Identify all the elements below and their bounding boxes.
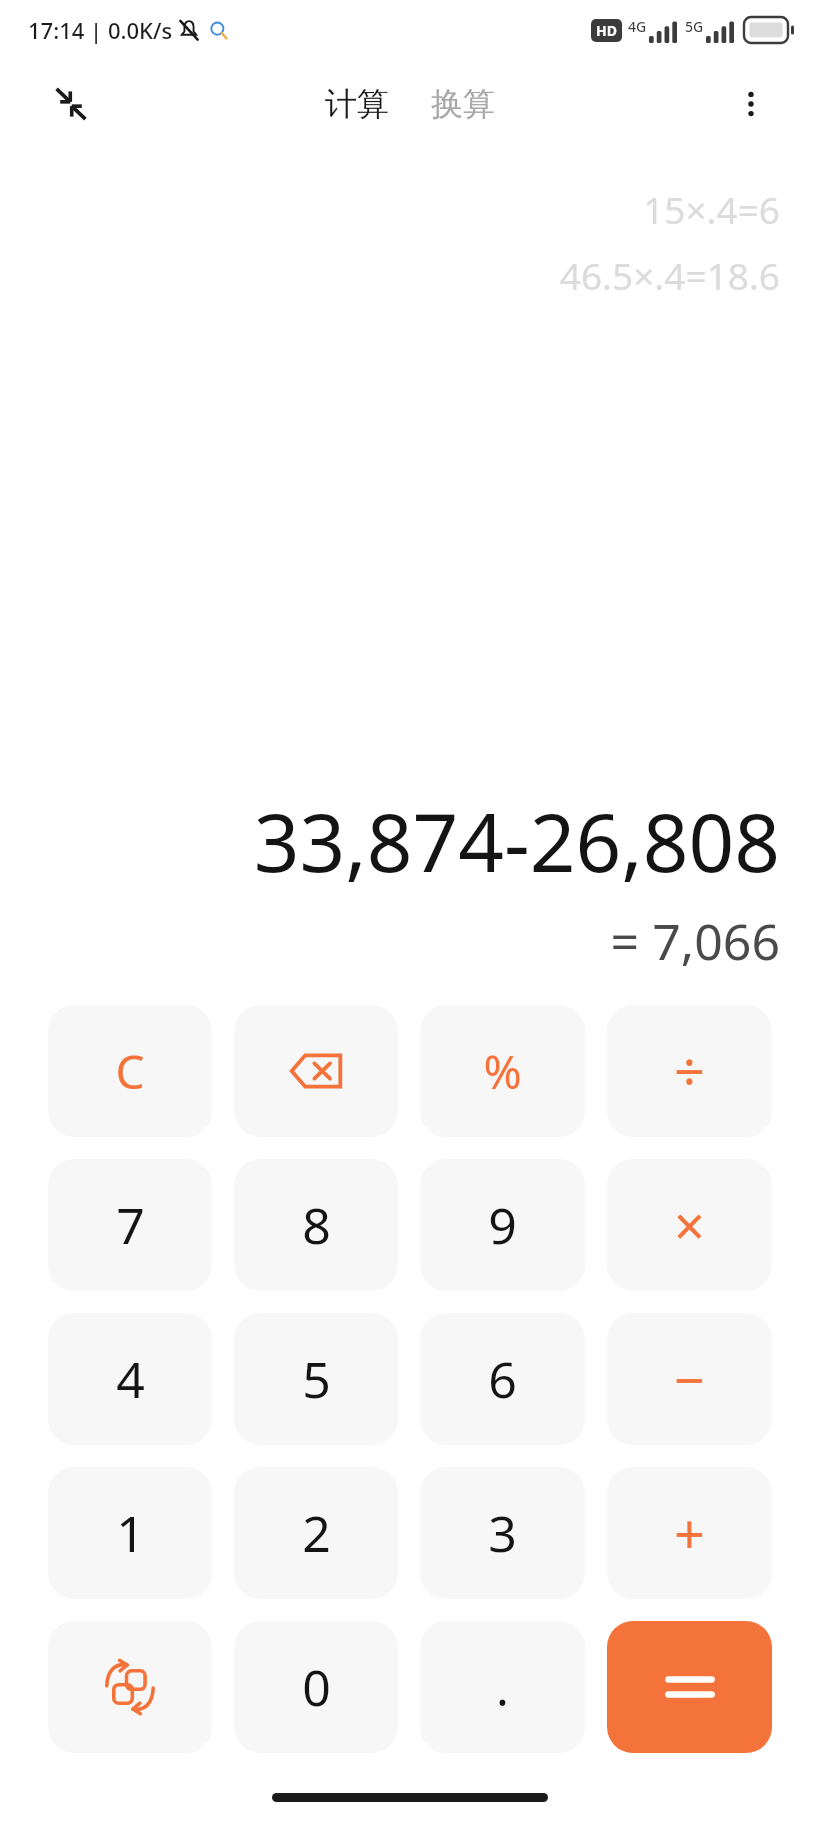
button[interactable]: 7: [48, 1159, 212, 1291]
staticText: 33,874-26,808: [253, 786, 780, 895]
button[interactable]: [607, 1621, 772, 1753]
button[interactable]: %: [420, 1005, 585, 1137]
staticText: = 7,066: [610, 907, 780, 975]
button[interactable]: 5: [234, 1313, 398, 1445]
staticText: 换算: [431, 84, 495, 124]
staticText: 2: [302, 1499, 331, 1567]
staticText: 5G: [685, 17, 704, 36]
staticText: 0: [302, 1653, 331, 1721]
staticText: ÷: [674, 1034, 705, 1108]
button[interactable]: −: [607, 1313, 772, 1445]
button[interactable]: 1: [48, 1467, 212, 1599]
button[interactable]: 8: [234, 1159, 398, 1291]
button[interactable]: ÷: [607, 1005, 772, 1137]
staticText: 5: [302, 1345, 331, 1413]
button[interactable]: 9: [420, 1159, 585, 1291]
button[interactable]: 2: [234, 1467, 398, 1599]
staticText: 6: [488, 1345, 517, 1413]
staticText: 46.5×.4=18.6: [559, 250, 780, 300]
button[interactable]: .: [420, 1621, 585, 1753]
staticText: 计算: [325, 84, 389, 124]
staticText: 1: [116, 1499, 145, 1567]
staticText: −: [674, 1342, 705, 1416]
staticText: 7: [116, 1191, 145, 1259]
button[interactable]: 6: [420, 1313, 585, 1445]
button[interactable]: Backspace: [234, 1005, 398, 1137]
staticText: +: [674, 1496, 705, 1570]
staticText: 3: [488, 1499, 517, 1567]
staticText: 8: [302, 1191, 331, 1259]
button[interactable]: Collapse: [44, 77, 98, 131]
staticText: ×: [674, 1188, 705, 1262]
button[interactable]: 4: [48, 1313, 212, 1445]
staticText: 17:14 | 0.0K/s: [28, 15, 173, 45]
staticText: 15×.4=6: [643, 184, 780, 234]
staticText: 4: [116, 1345, 145, 1413]
button[interactable]: 3: [420, 1467, 585, 1599]
staticText: 9: [488, 1191, 517, 1259]
staticText: 4G: [628, 17, 647, 36]
staticText: %: [483, 1040, 522, 1103]
button[interactable]: ×: [607, 1159, 772, 1291]
button[interactable]: More options: [724, 77, 778, 131]
staticText: HD: [596, 21, 617, 40]
button[interactable]: 换算: [421, 76, 505, 132]
button[interactable]: Unit converter: [48, 1621, 212, 1753]
button[interactable]: 0: [234, 1621, 398, 1753]
button[interactable]: +: [607, 1467, 772, 1599]
staticText: .: [496, 1655, 509, 1720]
button[interactable]: 计算: [315, 76, 399, 132]
staticText: C: [115, 1040, 145, 1103]
button[interactable]: C: [48, 1005, 212, 1137]
